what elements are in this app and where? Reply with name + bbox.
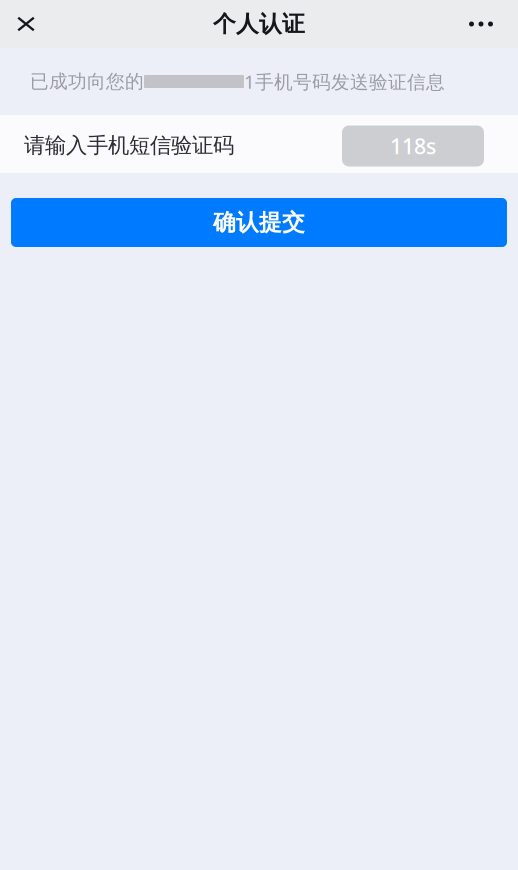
staticText: 个人认证 — [213, 10, 305, 38]
button[interactable]: 关闭 — [4, 0, 56, 47]
button[interactable]: 118s — [342, 121, 484, 166]
button[interactable]: 确认提交 — [11, 198, 507, 247]
staticText: 1手机号码发送验证信息 — [244, 69, 445, 94]
staticText: 请输入手机短信验证码 — [24, 132, 234, 159]
staticText: 已成功向您的 — [30, 70, 144, 93]
button[interactable]: 更多 — [455, 0, 507, 48]
staticText: 118s — [390, 132, 436, 160]
staticText: 确认提交 — [213, 209, 305, 236]
